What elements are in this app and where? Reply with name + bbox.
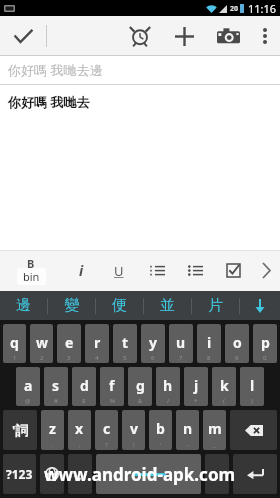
staticText: g — [136, 376, 145, 395]
staticText: ?123 — [6, 466, 33, 482]
staticText: m — [208, 419, 222, 438]
staticText: $ — [82, 397, 86, 405]
staticText: t — [122, 333, 129, 352]
button[interactable]: a — [16, 367, 40, 406]
staticText: w — [36, 333, 48, 352]
staticText: _ — [213, 441, 216, 449]
staticText: b — [156, 419, 165, 438]
button[interactable]: , — [68, 454, 92, 494]
staticText: h — [163, 376, 173, 395]
staticText: f — [109, 376, 115, 395]
button[interactable]: d — [72, 367, 96, 406]
staticText: a — [24, 376, 33, 395]
button[interactable]: o — [225, 324, 249, 363]
button[interactable]: h — [156, 367, 180, 406]
button[interactable]: e — [57, 324, 81, 363]
staticText: z — [49, 419, 56, 438]
staticText: o — [233, 333, 242, 352]
button[interactable]: Change keyboard language — [40, 454, 64, 494]
staticText: % — [110, 397, 115, 405]
button[interactable]: Numbered list — [138, 250, 176, 291]
button[interactable]: Save note — [0, 16, 46, 56]
staticText: 2 — [40, 354, 44, 362]
button[interactable]: Checklist — [214, 250, 252, 291]
button[interactable]: 你好嗎 我哋去 — [0, 85, 280, 250]
button[interactable]: . — [205, 454, 229, 494]
staticText: U — [114, 262, 124, 280]
staticText: i — [79, 261, 84, 280]
button[interactable]: More formatting options — [252, 250, 280, 291]
staticText: q — [10, 333, 19, 352]
button[interactable]: Set reminder — [118, 16, 162, 56]
button[interactable]: Space — [96, 454, 201, 494]
button[interactable]: v — [122, 410, 145, 450]
staticText: 變 — [64, 296, 79, 315]
button[interactable]: u — [169, 324, 193, 363]
staticText: d — [80, 376, 89, 395]
staticText: v — [130, 419, 138, 438]
button[interactable]: Add item — [162, 16, 206, 56]
button[interactable]: '詞 — [3, 410, 37, 450]
staticText: / — [167, 397, 170, 405]
button[interactable]: y — [141, 324, 165, 363]
staticText: i — [207, 333, 212, 352]
button[interactable]: ?123 — [3, 454, 36, 494]
button[interactable]: Take photo — [206, 16, 250, 56]
staticText: 邊 — [16, 296, 31, 315]
staticText: B — [27, 256, 35, 271]
staticText: r — [94, 333, 101, 352]
staticText: e — [65, 333, 74, 352]
button[interactable]: More options — [250, 16, 280, 56]
button[interactable]: Show more candidates — [240, 291, 280, 320]
button[interactable]: Bulleted list — [176, 250, 214, 291]
button[interactable]: Underline — [100, 250, 138, 291]
button[interactable]: f — [100, 367, 124, 406]
staticText: 你好嗎 我哋去 — [8, 93, 90, 111]
button[interactable]: Bold — [0, 250, 62, 291]
button[interactable]: 變 — [48, 291, 95, 320]
staticText: 7 — [179, 354, 183, 362]
button[interactable]: Backspace — [230, 410, 277, 450]
button[interactable]: w — [30, 324, 53, 363]
staticText: 4 — [95, 354, 99, 362]
staticText: 片 — [208, 296, 223, 315]
staticText: c — [103, 419, 111, 438]
staticText: * — [194, 397, 198, 405]
button[interactable]: r — [85, 324, 109, 363]
button[interactable]: 邊 — [0, 291, 47, 320]
button[interactable]: Italic — [62, 250, 100, 291]
staticText: ' — [160, 441, 162, 449]
button[interactable]: m — [203, 410, 226, 450]
staticText: 5 — [123, 354, 127, 362]
staticText: 0 — [263, 354, 267, 362]
button[interactable]: q — [3, 324, 26, 363]
staticText: 便 — [112, 296, 127, 315]
button[interactable]: n — [176, 410, 199, 450]
button[interactable]: 片 — [192, 291, 239, 320]
staticText: j — [194, 376, 199, 395]
staticText: 11:16 — [248, 1, 277, 16]
button[interactable]: l — [240, 367, 264, 406]
staticText: , — [79, 441, 81, 449]
button[interactable]: 並 — [144, 291, 191, 320]
staticText: 3 — [67, 354, 71, 362]
button[interactable]: 你好嗎 我哋去邊 — [0, 56, 280, 84]
staticText: @ — [25, 397, 31, 405]
button[interactable]: s — [44, 367, 68, 406]
button[interactable]: g — [128, 367, 152, 406]
button[interactable]: t — [113, 324, 137, 363]
button[interactable]: k — [212, 367, 236, 406]
button[interactable]: b — [149, 410, 172, 450]
staticText: ( — [223, 397, 225, 405]
button[interactable]: c — [95, 410, 118, 450]
button[interactable]: z — [41, 410, 64, 450]
button[interactable]: 便 — [96, 291, 143, 320]
staticText: - — [187, 441, 189, 449]
button[interactable]: p — [253, 324, 277, 363]
staticText: 9 — [235, 354, 239, 362]
button[interactable]: Enter — [233, 454, 277, 494]
button[interactable]: i — [197, 324, 221, 363]
button[interactable]: x — [68, 410, 91, 450]
staticText: '詞 — [12, 421, 29, 439]
button[interactable]: j — [184, 367, 208, 406]
